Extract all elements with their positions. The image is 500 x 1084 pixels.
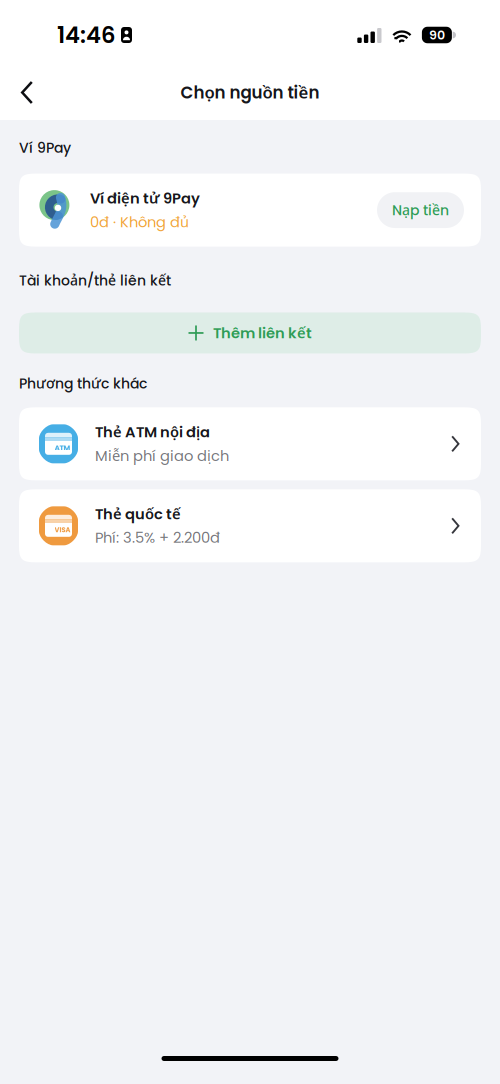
staticText: Thêm liên kết bbox=[213, 323, 312, 343]
staticText: Miễn phí giao dịch bbox=[95, 445, 229, 466]
staticText: ATM bbox=[54, 443, 70, 453]
button[interactable]: Back bbox=[5, 69, 49, 115]
staticText: Thẻ quốc tế bbox=[95, 504, 181, 524]
staticText: Phương thức khác bbox=[19, 373, 147, 393]
staticText: Ví 9Pay bbox=[19, 138, 71, 158]
staticText: VISA bbox=[54, 525, 70, 534]
staticText: Phí: 3.5% + 2.200đ bbox=[95, 527, 220, 548]
staticText: 14:46 bbox=[57, 19, 116, 51]
staticText: Tài khoản/thẻ liên kết bbox=[19, 271, 171, 290]
staticText: Ví điện tử 9Pay bbox=[90, 188, 200, 209]
button[interactable]: Thêm liên kết bbox=[19, 312, 481, 353]
staticText: Chọn nguồn tiền bbox=[180, 81, 319, 104]
button[interactable]: Nạp tiền bbox=[377, 192, 464, 228]
staticText: 90 bbox=[429, 26, 445, 44]
staticText: Thẻ ATM nội địa bbox=[95, 421, 210, 442]
button[interactable]: VISA bbox=[19, 489, 481, 562]
staticText: Nạp tiền bbox=[392, 200, 449, 220]
staticText: 0đ · Không đủ bbox=[90, 212, 189, 232]
button[interactable]: ATM bbox=[19, 407, 481, 480]
